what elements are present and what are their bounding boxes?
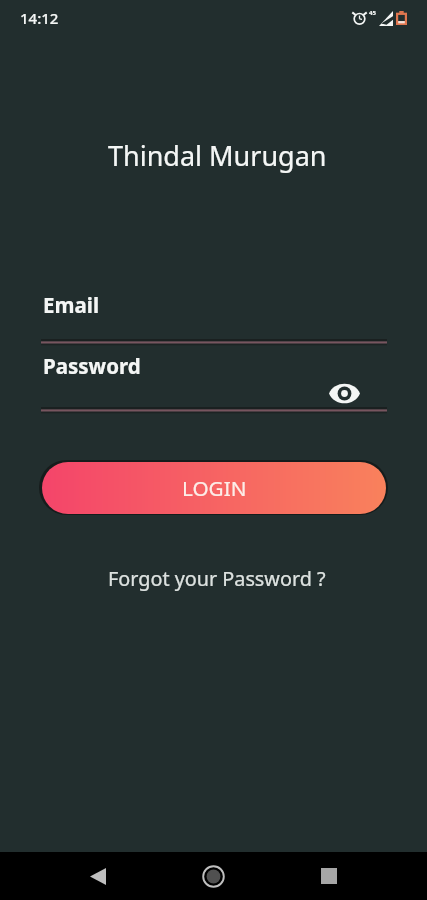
staticText: LOGIN xyxy=(182,474,247,502)
button[interactable]: Home xyxy=(189,852,237,900)
button[interactable]: Back xyxy=(74,852,122,900)
button[interactable]: Email xyxy=(41,286,387,345)
staticText: Password xyxy=(43,352,141,380)
button[interactable]: Forgot your Password ? xyxy=(108,565,326,592)
staticText: Email xyxy=(43,291,99,319)
staticText: Forgot your Password ? xyxy=(108,565,326,592)
staticText: 14:12 xyxy=(20,8,59,28)
button[interactable]: Show password xyxy=(327,378,361,408)
staticText: 45 xyxy=(369,9,376,17)
button[interactable]: LOGIN xyxy=(42,462,386,514)
button[interactable]: Recent apps xyxy=(305,852,353,900)
staticText: Thindal Murugan xyxy=(108,137,327,174)
button[interactable]: Password xyxy=(41,347,387,413)
